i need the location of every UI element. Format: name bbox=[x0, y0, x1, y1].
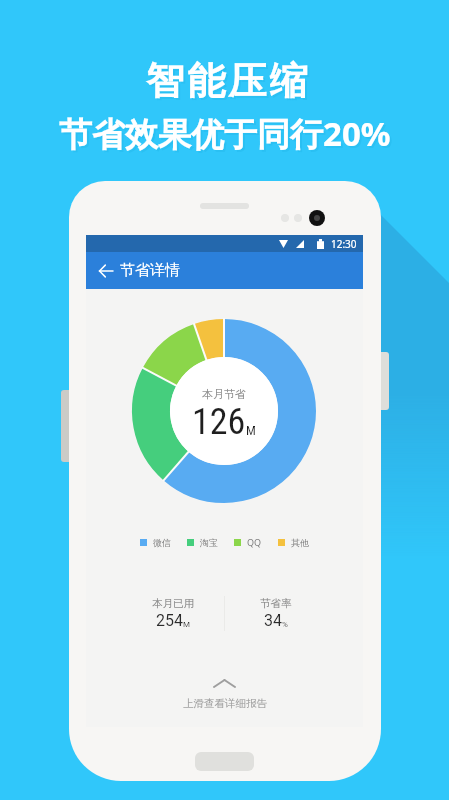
staticText: 本月已用 bbox=[152, 597, 194, 610]
staticText: 节省率 bbox=[260, 597, 292, 610]
staticText: 智能压缩 bbox=[146, 57, 311, 105]
button[interactable]: 节省率 bbox=[225, 597, 327, 630]
staticText: 12:30 bbox=[331, 237, 357, 251]
button[interactable]: 上滑查看详细报告 bbox=[86, 679, 363, 710]
staticText: QQ bbox=[247, 536, 262, 548]
button[interactable]: 淘宝 bbox=[187, 537, 218, 548]
staticText: 节省效果优于同行20% bbox=[61, 113, 393, 158]
staticText: 254 bbox=[156, 611, 183, 630]
staticText: 其他 bbox=[291, 537, 309, 548]
button[interactable]: Back bbox=[94, 259, 118, 283]
staticText: 淘宝 bbox=[200, 537, 218, 548]
staticText: 34 bbox=[264, 611, 282, 630]
staticText: 微信 bbox=[153, 537, 171, 548]
staticText: 节省详情 bbox=[120, 261, 180, 280]
button[interactable]: 本月已用 bbox=[122, 597, 224, 630]
staticText: 126 bbox=[192, 401, 246, 443]
staticText: 本月节省 bbox=[202, 387, 246, 401]
button[interactable]: QQ bbox=[234, 536, 262, 548]
button[interactable]: 其他 bbox=[278, 537, 309, 548]
button[interactable]: 微信 bbox=[140, 537, 171, 548]
staticText: % bbox=[282, 620, 288, 629]
staticText: M bbox=[246, 423, 256, 438]
staticText: M bbox=[183, 620, 190, 629]
staticText: 节省效果优于同行20% bbox=[59, 111, 391, 156]
staticText: 上滑查看详细报告 bbox=[183, 697, 267, 710]
staticText: 智能压缩 bbox=[148, 59, 313, 107]
